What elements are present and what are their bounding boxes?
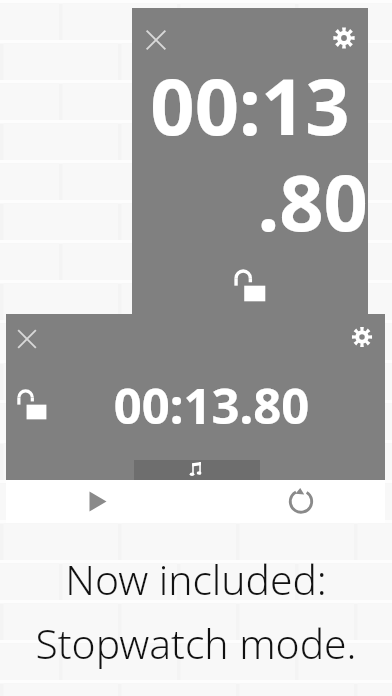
button[interactable]: Settings <box>345 320 379 354</box>
staticText: Stopwatch mode. <box>0 615 392 671</box>
staticText: .80 <box>132 148 368 254</box>
button[interactable]: Play <box>68 480 128 523</box>
staticText: 00:13.80 <box>22 372 392 439</box>
staticText: 00:13 <box>132 52 368 158</box>
button[interactable]: Reset <box>271 480 331 523</box>
button[interactable]: Unlock <box>233 268 267 302</box>
button[interactable]: Close <box>6 314 385 480</box>
staticText: Now included: <box>0 551 392 607</box>
button[interactable]: Music <box>134 460 260 480</box>
button[interactable]: Settings <box>326 20 362 56</box>
button[interactable]: Close <box>10 322 44 356</box>
button[interactable]: Close <box>132 8 368 314</box>
button[interactable]: Unlock <box>16 388 48 420</box>
button[interactable]: Close <box>138 22 174 58</box>
